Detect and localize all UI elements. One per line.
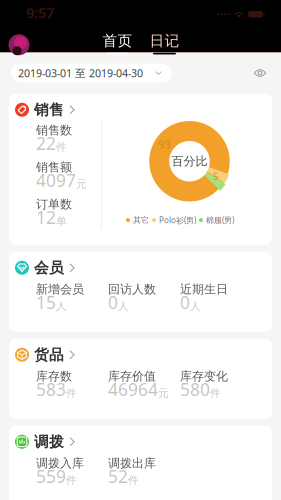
staticText: 2019-03-01 至 2019-04-30 (18, 66, 143, 80)
staticText: 人 (118, 300, 129, 313)
staticText: 百分比 (171, 154, 207, 169)
button[interactable]: 会员 (15, 261, 272, 275)
staticText: 调拨入库 (36, 456, 84, 471)
staticText: 货品 (34, 346, 64, 364)
staticText: 调拨 (34, 433, 64, 451)
staticText: 46964 (108, 378, 158, 401)
staticText: 580 (180, 378, 210, 401)
staticText: 4097 (36, 169, 76, 192)
staticText: 件 (66, 387, 77, 400)
button[interactable]: Profile (8, 34, 29, 55)
staticText: 15 (36, 291, 56, 314)
staticText: 人 (56, 300, 67, 313)
staticText: 件 (210, 387, 221, 400)
staticText: 单 (56, 215, 67, 228)
staticText: 元 (76, 178, 87, 191)
staticText: 销售额 (36, 160, 72, 175)
staticText: 销售数 (36, 123, 72, 138)
staticText: 订单数 (36, 197, 72, 212)
staticText: 库存变化 (180, 369, 228, 384)
staticText: 近期生日 (180, 282, 228, 297)
staticText: 583 (36, 378, 66, 401)
staticText: 回访人数 (108, 282, 156, 297)
button[interactable]: 销售 (15, 103, 135, 117)
staticText: 52 (108, 465, 128, 488)
staticText: 棉服(男) (206, 215, 234, 225)
staticText: 人 (190, 300, 201, 313)
staticText: 库存价值 (108, 369, 156, 384)
button[interactable]: 货品 (15, 348, 272, 362)
staticText: 首页 (102, 32, 132, 50)
staticText: 销售 (34, 101, 64, 119)
button[interactable]: 首页 (102, 32, 133, 54)
staticText: 调拨出库 (108, 456, 156, 471)
button[interactable]: Toggle amount visibility (250, 63, 270, 83)
button[interactable]: 日记 (149, 32, 180, 54)
button[interactable]: 调拨 (15, 435, 272, 449)
staticText: 其它 (133, 215, 149, 225)
staticText: 库存数 (36, 369, 72, 384)
staticText: 日记 (149, 32, 179, 50)
staticText: 5 (213, 170, 218, 182)
staticText: 559 (36, 465, 66, 488)
staticText: 新增会员 (36, 282, 84, 297)
staticText: 22 (36, 132, 56, 155)
staticText: Polo衫(男) (159, 215, 196, 225)
staticText: 件 (56, 141, 67, 154)
staticText: 12 (36, 206, 56, 229)
staticText: 件 (66, 474, 77, 487)
button[interactable]: 2019-03-01 至 2019-04-30 (11, 63, 172, 82)
staticText: 0 (108, 291, 118, 314)
staticText: 93 (158, 137, 170, 151)
staticText: 0 (180, 291, 190, 314)
staticText: 元 (158, 387, 169, 400)
staticText: 会员 (34, 259, 64, 277)
staticText: 件 (128, 474, 139, 487)
staticText: 9:57 (26, 3, 54, 22)
